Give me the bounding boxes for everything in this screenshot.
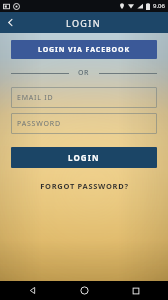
button[interactable]: LOGIN xyxy=(11,147,157,168)
staticText: OR xyxy=(78,68,90,78)
staticText: LOGIN xyxy=(68,152,100,163)
staticText: EMAIL ID xyxy=(17,93,54,103)
staticText: FORGOT PASSWORD? xyxy=(40,181,129,191)
staticText: LOGIN xyxy=(66,17,102,29)
button[interactable]: Recent apps xyxy=(116,281,156,300)
button[interactable]: Home xyxy=(64,281,104,300)
staticText: 9.06 xyxy=(153,2,165,10)
button[interactable]: LOGIN VIA FACEBOOK xyxy=(11,40,157,59)
button[interactable]: PASSWORD xyxy=(11,113,157,134)
button[interactable]: EMAIL ID xyxy=(11,87,157,108)
staticText: PASSWORD xyxy=(17,119,61,129)
button[interactable]: Back xyxy=(12,281,52,300)
button[interactable]: FORGOT PASSWORD? xyxy=(30,178,139,194)
staticText: LOGIN VIA FACEBOOK xyxy=(38,45,130,55)
button[interactable]: Back xyxy=(0,12,21,33)
